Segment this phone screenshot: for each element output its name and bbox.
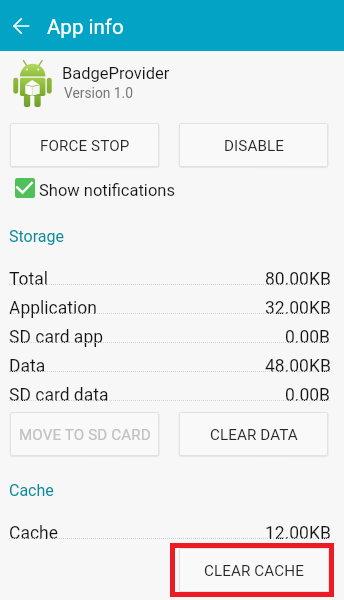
staticText: CLEAR DATA bbox=[210, 426, 298, 444]
staticText: 32.00KB bbox=[265, 298, 331, 319]
button[interactable]: Data bbox=[0, 343, 344, 372]
staticText: 0.00B bbox=[285, 327, 331, 348]
button[interactable]: CLEAR CACHE bbox=[179, 548, 329, 592]
staticText: BadgeProvider bbox=[62, 64, 170, 83]
staticText: SD card data bbox=[9, 385, 109, 406]
staticText: Version 1.0 bbox=[64, 85, 134, 101]
staticText: MOVE TO SD CARD bbox=[19, 426, 151, 444]
staticText: Data bbox=[9, 356, 46, 377]
staticText: Storage bbox=[9, 227, 64, 246]
staticText: FORCE STOP bbox=[40, 137, 130, 155]
staticText: SD card app bbox=[9, 327, 104, 348]
staticText: Application bbox=[9, 298, 97, 319]
button[interactable]: Cache bbox=[0, 510, 344, 539]
staticText: Total bbox=[9, 269, 49, 290]
staticText: 80.00KB bbox=[265, 269, 331, 290]
button[interactable]: Back bbox=[0, 3, 41, 48]
staticText: CLEAR CACHE bbox=[204, 562, 304, 580]
staticText: 0.00B bbox=[285, 385, 331, 406]
button[interactable]: MOVE TO SD CARD bbox=[10, 412, 159, 456]
staticText: Cache bbox=[9, 523, 58, 544]
staticText: App info bbox=[47, 15, 124, 39]
button[interactable]: SD card data bbox=[0, 372, 344, 401]
button[interactable]: CLEAR DATA bbox=[179, 412, 328, 456]
staticText: Cache bbox=[9, 481, 54, 500]
button[interactable]: Show notifications bbox=[15, 178, 175, 203]
button[interactable]: Application bbox=[0, 285, 344, 314]
staticText: DISABLE bbox=[224, 137, 284, 155]
button[interactable]: SD card app bbox=[0, 314, 344, 343]
button[interactable]: FORCE STOP bbox=[10, 123, 159, 167]
staticText: Show notifications bbox=[39, 181, 175, 200]
staticText: 12.00KB bbox=[265, 523, 331, 544]
button[interactable]: Total bbox=[0, 256, 344, 285]
staticText: 48.00KB bbox=[265, 356, 331, 377]
button[interactable]: DISABLE bbox=[179, 123, 328, 167]
